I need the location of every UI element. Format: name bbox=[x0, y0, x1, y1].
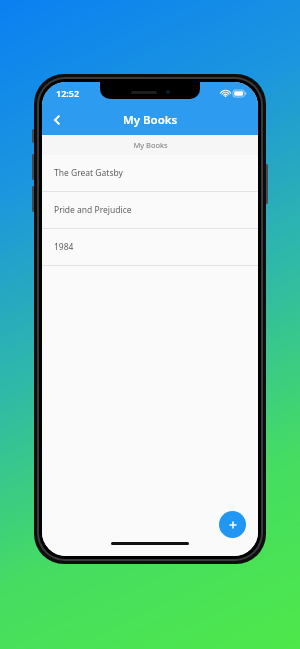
staticText: Pride and Prejudice bbox=[54, 204, 132, 216]
button[interactable]: Pride and Prejudice bbox=[42, 192, 258, 229]
staticText: My Books bbox=[133, 140, 168, 150]
staticText: 1984 bbox=[54, 241, 74, 253]
button[interactable]: Add book bbox=[219, 511, 246, 538]
staticText: The Great Gatsby bbox=[54, 167, 123, 179]
button[interactable]: 1984 bbox=[42, 229, 258, 266]
button[interactable]: Back bbox=[42, 105, 72, 135]
button[interactable]: The Great Gatsby bbox=[42, 155, 258, 192]
staticText: My Books bbox=[123, 112, 178, 128]
staticText: 12:52 bbox=[56, 87, 80, 99]
